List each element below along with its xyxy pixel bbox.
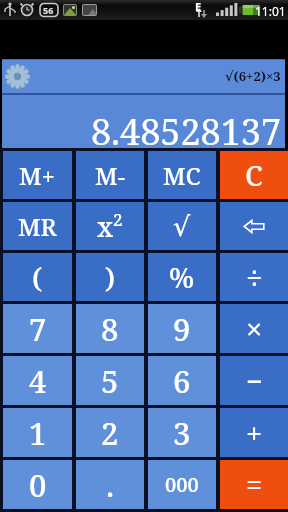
staticText: E xyxy=(195,0,202,14)
staticText: 8 xyxy=(101,308,119,350)
staticText: 5 xyxy=(101,360,119,402)
button[interactable]: M+ xyxy=(3,151,72,199)
button[interactable]: M- xyxy=(76,151,144,199)
staticText: 11:01 xyxy=(255,3,286,19)
button[interactable]: 5 xyxy=(76,356,144,405)
staticText: M+ xyxy=(19,159,56,192)
staticText: − xyxy=(246,361,263,400)
staticText: ) xyxy=(105,258,116,296)
button[interactable]: . xyxy=(76,460,144,509)
button[interactable]: ( xyxy=(3,253,72,301)
staticText: = xyxy=(246,465,263,504)
staticText: 000 xyxy=(165,471,199,498)
button[interactable]: 7 xyxy=(3,304,72,353)
staticText: C xyxy=(245,156,263,194)
button[interactable]: + xyxy=(220,408,288,457)
staticText: % xyxy=(169,258,195,296)
staticText: √(6+2)×3 xyxy=(225,67,281,85)
staticText: MR xyxy=(18,210,57,243)
button[interactable]: 1 xyxy=(3,408,72,457)
staticText: 6 xyxy=(173,360,191,402)
staticText: 7 xyxy=(29,308,47,350)
button[interactable]: 000 xyxy=(148,460,216,509)
staticText: 1 xyxy=(29,412,47,454)
button[interactable]: √ xyxy=(148,202,216,250)
staticText: 3 xyxy=(173,412,191,454)
staticText: MC xyxy=(163,159,201,192)
staticText: . xyxy=(106,464,115,506)
staticText: ( xyxy=(32,258,43,296)
button[interactable]: − xyxy=(220,356,288,405)
staticText: 0 xyxy=(29,464,47,506)
staticText: 2 xyxy=(101,412,119,454)
button[interactable]: ) xyxy=(76,253,144,301)
button[interactable]: 6 xyxy=(148,356,216,405)
button[interactable]: × xyxy=(220,304,288,353)
button[interactable]: = xyxy=(220,460,288,509)
button[interactable]: 0 xyxy=(3,460,72,509)
staticText: ÷ xyxy=(246,257,263,298)
button[interactable] xyxy=(5,64,30,89)
button[interactable]: 4 xyxy=(3,356,72,405)
staticText: 9 xyxy=(173,308,191,350)
staticText: √ xyxy=(173,211,191,242)
button[interactable]: 3 xyxy=(148,408,216,457)
button[interactable]: MC xyxy=(148,151,216,199)
button[interactable]: 2 xyxy=(76,408,144,457)
staticText: x2 xyxy=(97,208,123,245)
button[interactable]: 8 xyxy=(76,304,144,353)
staticText: × xyxy=(246,309,263,348)
button[interactable]: % xyxy=(148,253,216,301)
button[interactable]: MR xyxy=(3,202,72,250)
button[interactable]: ÷ xyxy=(220,253,288,301)
button[interactable]: x2 xyxy=(76,202,144,250)
staticText: 8.48528137 xyxy=(91,107,282,148)
button[interactable]: 9 xyxy=(148,304,216,353)
button[interactable] xyxy=(220,202,288,250)
staticText: 56 xyxy=(43,4,54,16)
button[interactable]: C xyxy=(220,151,288,199)
staticText: M- xyxy=(95,159,126,192)
staticText: + xyxy=(246,413,263,452)
staticText: 4 xyxy=(29,360,47,402)
